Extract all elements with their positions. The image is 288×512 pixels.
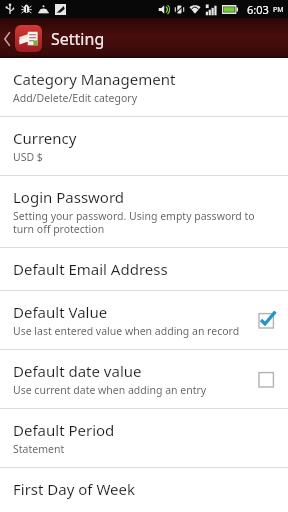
button[interactable]: Default Email Address (0, 248, 288, 290)
staticText: USD $ (13, 150, 43, 164)
button[interactable]: First Day of Week (0, 468, 288, 512)
staticText: Category Management (13, 69, 176, 89)
staticText: 6:03 (247, 2, 269, 17)
staticText: Default date value (13, 361, 142, 381)
staticText: Default Value (13, 302, 108, 322)
staticText: PM (273, 5, 284, 15)
staticText: Default Email Address (13, 259, 168, 279)
button[interactable]: Up, Setting (0, 18, 288, 58)
staticText: Default Period (13, 420, 115, 440)
staticText: Login Password (13, 187, 125, 207)
button[interactable]: Default Period (0, 409, 288, 467)
button[interactable]: Category Management (0, 58, 288, 116)
staticText: Use last entered value when adding an re… (13, 324, 240, 338)
staticText: Statement (13, 442, 65, 456)
staticText: Setting your password. Using empty passw… (13, 209, 277, 236)
button[interactable]: Checked (257, 310, 277, 330)
button[interactable]: Default date value (0, 350, 288, 408)
staticText: Use current date when adding an entry (13, 383, 207, 397)
button[interactable]: Login Password (0, 176, 288, 247)
button[interactable]: Currency (0, 117, 288, 175)
staticText: Add/Delete/Edit category (13, 91, 138, 105)
staticText: Currency (13, 128, 77, 148)
staticText: Setting (51, 28, 105, 50)
button[interactable]: Default Value (0, 291, 288, 349)
button[interactable]: Unchecked (257, 369, 277, 389)
staticText: First Day of Week (13, 479, 135, 499)
